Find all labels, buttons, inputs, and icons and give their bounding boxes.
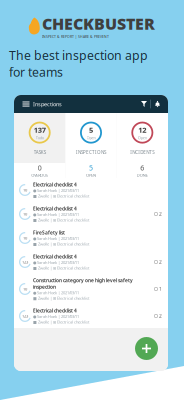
staticText: ■ Zwolle | ⊞ Electrical checklist — [33, 265, 89, 271]
staticText: 2 — [159, 211, 162, 217]
staticText: INSPECTIONS — [76, 149, 106, 155]
staticText: ● Sarah Hoek | 2021/03/11 — [33, 236, 79, 241]
button[interactable]: 123 — [14, 250, 168, 274]
staticText: INSPECT & REPORT | SHARE & PREVENT — [42, 34, 109, 39]
staticText: 123 — [22, 259, 28, 265]
button[interactable]: 10 — [14, 202, 168, 226]
staticText: 5 — [89, 163, 93, 172]
staticText: 6 — [140, 163, 144, 172]
staticText: TASKS — [34, 149, 46, 155]
staticText: OVERDUE — [31, 172, 48, 178]
staticText: 2 — [159, 313, 162, 319]
button[interactable]: 12 — [117, 113, 168, 163]
button[interactable]: 123 — [14, 304, 168, 328]
button[interactable]: Notifications — [151, 95, 164, 113]
button[interactable]: 0 — [14, 163, 65, 178]
button[interactable]: 6 — [117, 163, 168, 178]
staticText: ● Sarah Hoek | 2021/03/11 — [33, 290, 79, 295]
staticText: Inspections — [33, 100, 62, 108]
button[interactable]: Menu — [19, 95, 33, 113]
staticText: for teams — [9, 64, 63, 80]
staticText: Open — [86, 135, 95, 140]
staticText: ■ Zwolle | ⊞ Electrical checklist — [33, 241, 89, 247]
staticText: Electrical checklist 4 — [33, 253, 77, 260]
staticText: 12 — [138, 125, 146, 135]
staticText: OPEN — [86, 172, 96, 178]
staticText: 10 — [23, 211, 27, 217]
staticText: 137 — [34, 125, 46, 135]
button[interactable]: Filter — [138, 95, 150, 113]
button[interactable]: 10 — [14, 274, 168, 304]
staticText: FireSafety list — [33, 229, 65, 236]
staticText: inspection — [33, 284, 56, 290]
button[interactable]: 5 — [65, 163, 117, 178]
staticText: ● Sarah Hoek | 2021/03/11 — [33, 314, 79, 319]
staticText: Open — [138, 135, 147, 140]
staticText: 123 — [22, 313, 28, 319]
staticText: ● Sarah Hoek | 2021/03/11 — [33, 260, 79, 265]
staticText: ■ Zwolle | ⊞ Electrical checklist — [33, 319, 89, 325]
button[interactable]: 5 — [65, 113, 117, 163]
button[interactable]: 137 — [14, 113, 65, 163]
staticText: CHECKBUSTER — [42, 13, 155, 34]
staticText: 10 — [23, 235, 27, 241]
staticText: ● Sarah Hoek | 2021/03/11 — [33, 212, 79, 217]
button[interactable]: 10 — [14, 226, 168, 250]
staticText: 10 — [23, 187, 27, 193]
staticText: 1 — [159, 286, 162, 292]
staticText: 0 — [38, 163, 42, 172]
staticText: ■ Zwolle | ⊞ Electrical checklist — [33, 295, 89, 301]
button[interactable]: 10 — [14, 178, 168, 202]
staticText: ■ Zwolle | ⊞ Electrical checklist — [33, 193, 89, 199]
staticText: Construction category one high level saf… — [33, 277, 133, 283]
staticText: DONE — [137, 172, 148, 178]
staticText: Electrical checklist 4 — [33, 307, 77, 314]
staticText: ■ Zwolle | ⊞ Electrical checklist — [33, 217, 89, 223]
staticText: Electrical checklist 4 — [33, 205, 77, 212]
staticText: Todo — [36, 135, 44, 140]
staticText: Electrical checklist 4 — [33, 181, 77, 188]
staticText: 2 — [159, 259, 162, 265]
staticText: 10 — [23, 286, 27, 292]
staticText: 5 — [89, 125, 93, 135]
staticText: INCIDENTS — [130, 149, 154, 155]
button[interactable]: Add inspection — [135, 337, 158, 360]
staticText: The best inspection app — [9, 47, 148, 64]
staticText: ● Sarah Hoek | 2021/03/11 — [33, 188, 79, 193]
